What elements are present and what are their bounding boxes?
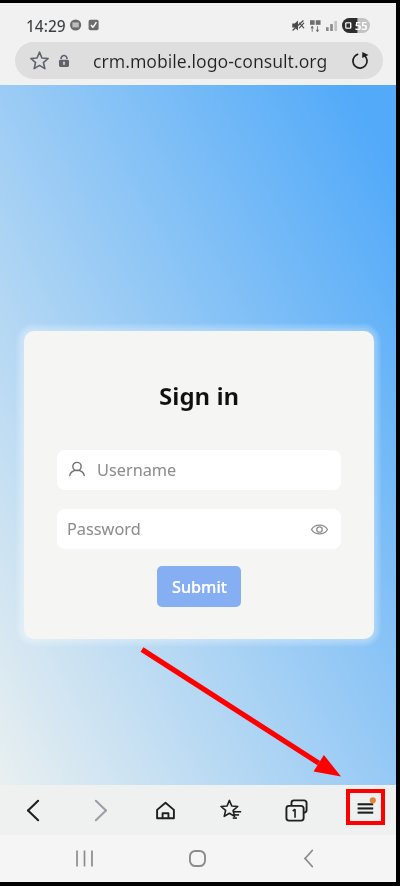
button[interactable]: Menu (346, 789, 385, 825)
button[interactable]: Back (286, 835, 330, 882)
staticText: Username (97, 459, 177, 481)
button[interactable]: Back (11, 790, 55, 830)
staticText: crm.mobile.logo-consult.org (93, 49, 328, 73)
other: Bookmark this page (30, 51, 49, 70)
button[interactable]: Tabs (274, 790, 318, 830)
button[interactable]: Submit (157, 566, 241, 607)
button[interactable]: Username (57, 450, 341, 490)
button[interactable]: Home (143, 790, 187, 830)
button[interactable]: Bookmarks (209, 790, 253, 830)
other: Reload (351, 52, 369, 70)
button[interactable]: Forward (78, 790, 122, 830)
staticText: 14:29 (26, 15, 66, 36)
button[interactable]: Home (175, 835, 219, 882)
staticText: Password (67, 518, 141, 540)
staticText: Sign in (159, 379, 240, 412)
button[interactable]: Password (57, 509, 341, 549)
button[interactable]: Bookmark this page (15, 42, 383, 79)
other: Show password (311, 523, 328, 536)
button[interactable]: Recents (62, 835, 106, 882)
staticText: 55 (355, 18, 368, 33)
staticText: Submit (172, 576, 227, 598)
